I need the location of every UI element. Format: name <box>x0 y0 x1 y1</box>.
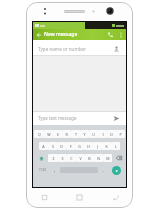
button[interactable]: X <box>58 154 67 162</box>
button[interactable]: Backspace <box>112 153 125 163</box>
button[interactable]: , <box>50 165 59 175</box>
staticText: Type text message <box>38 115 77 121</box>
button[interactable]: K <box>102 142 111 150</box>
button[interactable]: H <box>84 142 93 150</box>
button[interactable]: Type name or number <box>33 40 126 56</box>
staticText: O <box>110 132 113 137</box>
button[interactable]: More options <box>116 30 125 39</box>
staticText: E <box>57 132 59 137</box>
staticText: C <box>70 156 73 161</box>
button[interactable]: L <box>111 142 120 150</box>
button[interactable]: W <box>44 130 53 138</box>
staticText: M <box>106 156 110 161</box>
staticText: ?123 <box>39 168 46 172</box>
staticText: N <box>97 156 100 161</box>
staticText: G <box>78 144 81 149</box>
staticText: H <box>87 144 90 149</box>
button[interactable]: Recent apps <box>37 190 51 204</box>
button[interactable]: V <box>76 154 85 162</box>
staticText: U <box>92 132 95 137</box>
staticText: K <box>105 144 108 149</box>
staticText: New message <box>44 31 78 38</box>
staticText: . <box>103 167 105 173</box>
button[interactable]: Send message <box>108 165 125 175</box>
button[interactable]: Home <box>72 190 86 204</box>
staticText: J <box>97 144 98 149</box>
staticText: V <box>79 156 82 161</box>
staticText: Y <box>83 132 86 137</box>
staticText: I <box>102 132 104 137</box>
button[interactable]: Add contact <box>112 44 121 53</box>
staticText: P <box>119 132 122 137</box>
staticText: Z <box>52 156 55 161</box>
button[interactable]: . <box>99 165 108 175</box>
button[interactable]: Back <box>108 190 122 204</box>
button[interactable]: Z <box>48 154 58 162</box>
button[interactable]: O <box>107 130 116 138</box>
staticText: T <box>75 132 77 137</box>
button[interactable]: Back <box>33 29 44 40</box>
button[interactable]: F <box>66 142 75 150</box>
staticText: D <box>60 144 63 149</box>
staticText: Q <box>38 132 41 137</box>
button[interactable]: ?123 <box>34 165 50 175</box>
staticText: A <box>42 144 45 149</box>
staticText: R <box>65 132 68 137</box>
button[interactable]: Shift <box>34 153 48 163</box>
staticText: , <box>54 167 56 173</box>
button[interactable]: Y <box>80 130 89 138</box>
button[interactable]: Q <box>34 130 44 138</box>
staticText: X <box>61 156 64 161</box>
button[interactable]: U <box>89 130 98 138</box>
staticText: F <box>70 144 72 149</box>
button[interactable]: Call <box>105 29 116 40</box>
button[interactable]: I <box>98 130 107 138</box>
button[interactable]: Send <box>111 113 121 123</box>
staticText: S <box>52 144 54 149</box>
button[interactable]: N <box>94 154 103 162</box>
button[interactable]: E <box>53 130 62 138</box>
button[interactable]: D <box>57 142 66 150</box>
button[interactable]: A <box>39 142 48 150</box>
staticText: W <box>47 132 51 137</box>
button[interactable]: T <box>71 130 80 138</box>
button[interactable]: S <box>48 142 57 150</box>
button[interactable]: Type text message <box>33 111 126 125</box>
button[interactable]: C <box>67 154 76 162</box>
button[interactable]: G <box>75 142 84 150</box>
button[interactable]: P <box>116 130 125 138</box>
staticText: L <box>115 144 117 149</box>
button[interactable]: J <box>93 142 102 150</box>
button[interactable]: R <box>62 130 71 138</box>
staticText: Type name or number <box>38 46 87 52</box>
button[interactable]: B <box>85 154 94 162</box>
button[interactable]: M <box>103 154 112 162</box>
staticText: B <box>88 156 91 161</box>
